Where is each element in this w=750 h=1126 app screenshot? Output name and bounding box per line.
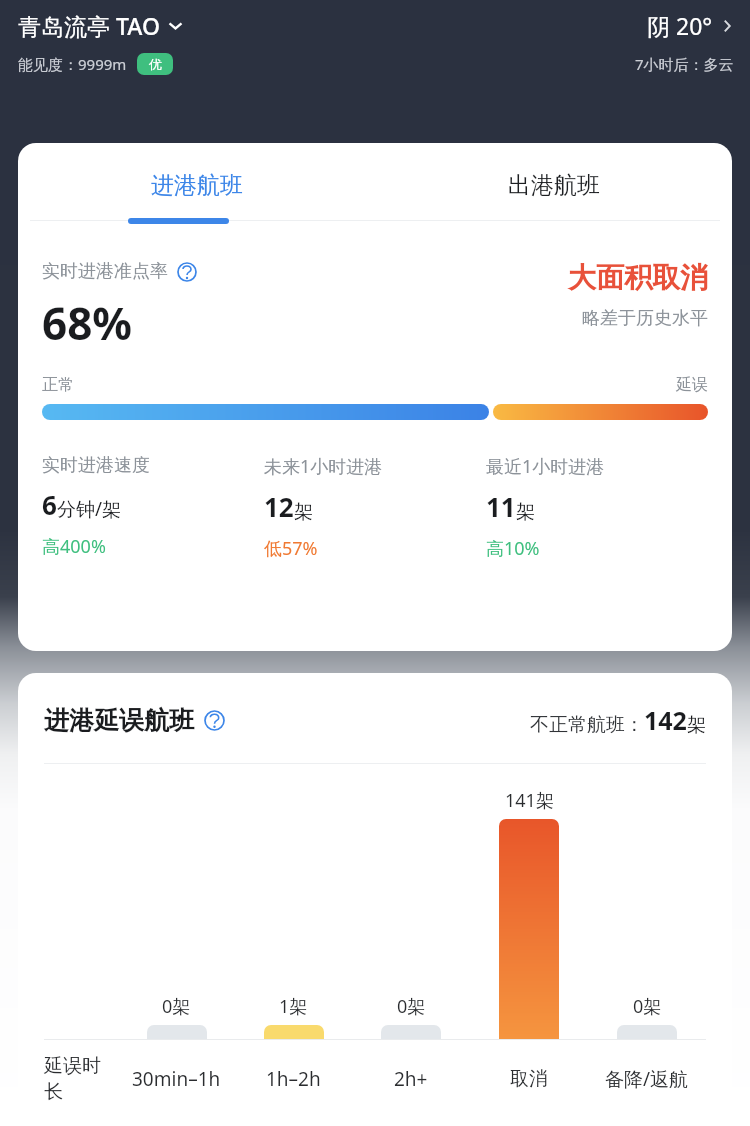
staticText: 30min–1h	[132, 1066, 221, 1092]
staticText: 延误时长	[44, 1054, 118, 1104]
staticText: 青岛流亭 TAO	[18, 10, 160, 41]
staticText: 架	[294, 500, 313, 524]
staticText: 68%	[42, 293, 133, 353]
staticText: 备降/返航	[605, 1066, 689, 1092]
staticText: 架	[516, 500, 535, 524]
button[interactable]: On-time rate help	[177, 262, 197, 282]
staticText: 出港航班	[508, 171, 600, 200]
staticText: 优	[149, 56, 162, 72]
staticText: 高400%	[42, 534, 106, 559]
other: Choose airport	[168, 18, 183, 33]
button[interactable]: 进港航班	[18, 171, 375, 200]
staticText: 6	[42, 487, 57, 522]
button[interactable]: Delayed flights help	[204, 710, 225, 731]
staticText: 11	[486, 489, 516, 524]
staticText: 能见度：9999m	[18, 54, 127, 74]
staticText: 2h+	[394, 1066, 428, 1092]
staticText: 0架	[162, 994, 191, 1019]
staticText: 0架	[397, 994, 426, 1019]
staticText: 略差于历史水平	[582, 307, 708, 330]
button[interactable]: 阴 20°	[647, 10, 734, 41]
staticText: 阴 20°	[647, 10, 713, 41]
staticText: 12	[264, 489, 294, 524]
staticText: 7小时后：多云	[635, 54, 734, 74]
staticText: 0架	[633, 994, 662, 1019]
button[interactable]: 青岛流亭 TAO	[18, 10, 183, 41]
staticText: 大面积取消	[568, 260, 708, 295]
button[interactable]: 出港航班	[375, 171, 732, 200]
staticText: 低57%	[264, 536, 318, 561]
staticText: 1架	[279, 994, 308, 1019]
staticText: 未来1小时进港	[264, 454, 383, 479]
staticText: 延误	[676, 375, 708, 395]
staticText: 不正常航班：	[530, 713, 644, 737]
staticText: 分钟/架	[57, 496, 122, 522]
staticText: 架	[687, 713, 706, 737]
staticText: 正常	[42, 375, 74, 395]
staticText: 实时进港速度	[42, 454, 150, 477]
staticText: 1h–2h	[266, 1066, 321, 1092]
staticText: 141架	[505, 788, 554, 813]
staticText: 实时进港准点率	[42, 260, 168, 283]
staticText: 142	[644, 703, 687, 737]
staticText: 高10%	[486, 536, 540, 561]
staticText: 进港延误航班	[44, 705, 194, 736]
staticText: 进港航班	[151, 171, 243, 200]
staticText: 最近1小时进港	[486, 454, 605, 479]
staticText: 取消	[510, 1067, 548, 1091]
other: Weather detail	[720, 19, 734, 33]
